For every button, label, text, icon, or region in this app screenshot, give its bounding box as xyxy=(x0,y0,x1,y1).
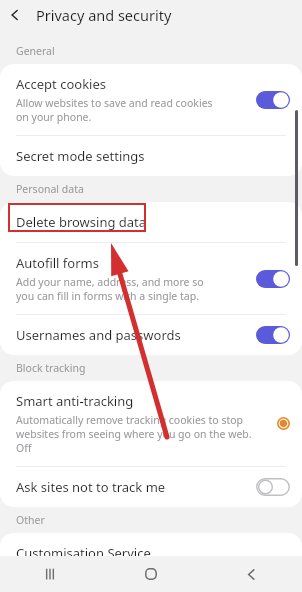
staticText: Block tracking xyxy=(16,361,86,375)
button[interactable]: Recent apps xyxy=(0,556,100,592)
staticText: Usernames and passwords xyxy=(16,326,181,344)
button[interactable]: Home xyxy=(100,556,201,592)
staticText: Automatically remove tracking cookies to… xyxy=(16,413,252,441)
button[interactable]: Delete browsing data xyxy=(0,202,302,243)
button[interactable]: Autofill forms xyxy=(0,243,302,315)
button[interactable]: Ask sites not to track me xyxy=(0,467,302,507)
button[interactable]: Smart anti-tracking xyxy=(0,381,302,467)
staticText: Add your name, address, and more so you … xyxy=(16,275,204,303)
staticText: Off xyxy=(16,441,32,455)
button[interactable]: Accept cookies xyxy=(0,64,302,136)
staticText: Secret mode settings xyxy=(16,147,145,165)
staticText: Ask sites not to track me xyxy=(16,478,166,496)
staticText: Privacy and security xyxy=(36,5,172,25)
staticText: Autofill forms xyxy=(16,254,99,272)
button[interactable]: Customisation Service xyxy=(0,533,302,573)
staticText: Allow websites to save and read cookies … xyxy=(16,96,213,124)
staticText: Accept cookies xyxy=(16,75,107,93)
staticText: Smart anti-tracking xyxy=(16,392,134,410)
staticText: Other xyxy=(16,513,45,527)
staticText: Personal data xyxy=(16,182,84,196)
staticText: General xyxy=(16,44,55,58)
button[interactable]: Back xyxy=(0,0,30,30)
button[interactable]: Usernames and passwords xyxy=(0,315,302,355)
staticText: Delete browsing data xyxy=(16,213,147,231)
button[interactable]: Secret mode settings xyxy=(0,136,302,176)
button[interactable]: Back xyxy=(201,556,302,592)
staticText: Customisation Service xyxy=(16,544,151,562)
